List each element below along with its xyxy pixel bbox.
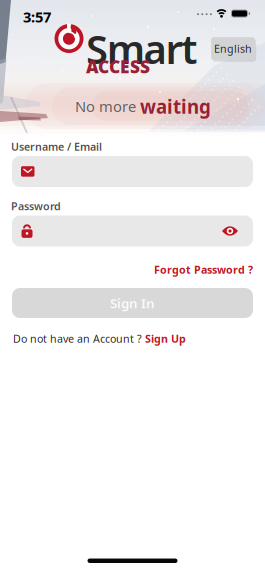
button[interactable]: Sign Up <box>145 331 186 346</box>
staticText: waiting <box>140 94 211 119</box>
staticText: ACCESS <box>86 55 150 78</box>
staticText: Forgot Password ? <box>154 262 253 277</box>
button[interactable]: Forgot Password ? <box>154 262 253 277</box>
staticText: Do not have an Account ? <box>13 331 142 346</box>
staticText: 3:57 <box>23 7 51 26</box>
button[interactable]: Show password <box>222 226 238 236</box>
staticText: Sign In <box>110 294 155 312</box>
staticText: Sign Up <box>145 331 186 346</box>
button[interactable]: Sign In <box>12 288 253 318</box>
button[interactable]: Password <box>12 215 253 246</box>
staticText: English <box>214 41 252 56</box>
staticText: Smart <box>86 22 197 75</box>
staticText: Username / Email <box>11 139 102 154</box>
button[interactable]: Language: English <box>211 37 255 60</box>
staticText: Password <box>11 199 61 213</box>
button[interactable]: Username / Email <box>12 156 253 187</box>
staticText: No more <box>75 97 136 116</box>
